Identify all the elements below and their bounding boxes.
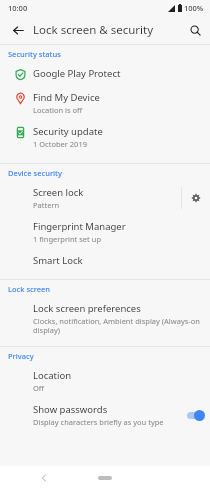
staticText: Location is off [33, 105, 83, 115]
button[interactable]: Back [34, 468, 54, 488]
button[interactable]: Find My Device [0, 86, 210, 120]
button[interactable]: Search [184, 19, 206, 41]
staticText: Lock screen preferences [33, 302, 141, 315]
button[interactable]: Screen lock [0, 181, 181, 215]
button[interactable]: Google Play Protect [0, 62, 210, 86]
button[interactable]: Smart Lock [0, 249, 210, 272]
staticText: Off [33, 383, 45, 393]
button[interactable]: Back [7, 19, 29, 41]
button[interactable]: Lock screen preferences [0, 297, 210, 341]
staticText: Device security [8, 168, 62, 178]
staticText: 10:00 [8, 3, 28, 13]
staticText: Privacy [8, 351, 34, 361]
button[interactable]: Show passwords [0, 398, 210, 432]
staticText: Find My Device [33, 91, 100, 104]
button[interactable]: Fingerprint Manager [0, 215, 210, 249]
staticText: Smart Lock [33, 254, 83, 267]
button[interactable]: Home [90, 471, 120, 485]
staticText: Show passwords [33, 403, 108, 416]
staticText: Security update [33, 125, 103, 138]
staticText: Fingerprint Manager [33, 220, 126, 233]
staticText: Lock screen [8, 284, 51, 294]
staticText: Display characters briefly as you type [33, 417, 164, 427]
staticText: 1 fingerprint set up [33, 234, 101, 244]
staticText: 100% [184, 3, 204, 13]
button[interactable]: Location [0, 364, 210, 398]
staticText: Google Play Protect [33, 67, 121, 80]
button[interactable]: Show passwords toggle [186, 407, 210, 423]
staticText: 1 October 2019 [33, 139, 87, 149]
button[interactable]: Security update [0, 120, 210, 154]
staticText: Clocks, notification, Ambient display (A… [33, 316, 200, 336]
staticText: Lock screen & security [33, 22, 154, 38]
staticText: Security status [8, 49, 61, 59]
staticText: Location [33, 369, 72, 382]
staticText: Pattern [33, 200, 60, 210]
button[interactable]: Screen lock settings [182, 184, 210, 212]
staticText: Screen lock [33, 186, 84, 199]
